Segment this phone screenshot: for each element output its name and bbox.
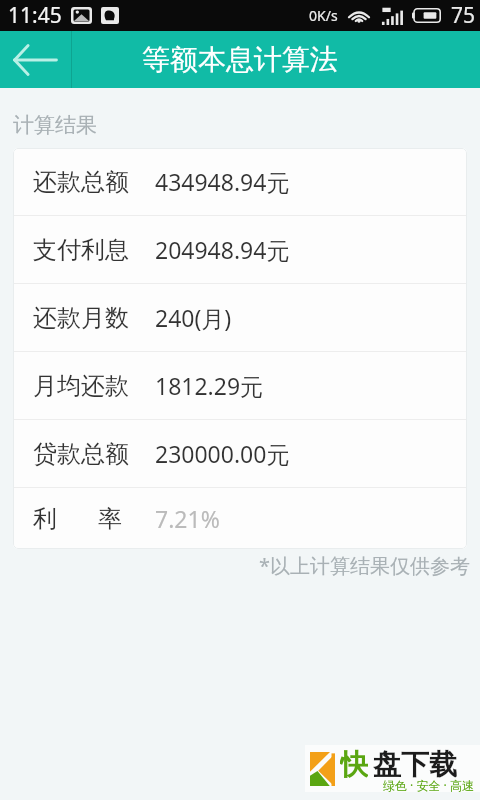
staticText: 11:45 [8, 1, 62, 30]
staticText: 还款总额 [33, 167, 129, 197]
button[interactable]: 贷款总额 [13, 420, 467, 487]
button[interactable]: 月均还款 [13, 352, 467, 419]
staticText: 230000.00元 [155, 438, 290, 469]
staticText: 率 [98, 504, 122, 534]
staticText: 贷款总额 [33, 439, 129, 469]
staticText: 204948.94元 [155, 234, 290, 265]
staticText: 计算结果 [13, 112, 97, 138]
staticText: 盘下载 [373, 747, 457, 781]
button[interactable]: Back [0, 31, 71, 88]
staticText: 75 [451, 1, 476, 30]
staticText: 绿色 · 安全 · 高速 [383, 777, 474, 793]
staticText: 0K/s [309, 6, 338, 25]
staticText: 1812.29元 [155, 370, 264, 401]
staticText: 快 [340, 747, 368, 781]
staticText: 7.21% [155, 503, 220, 534]
staticText: 240(月) [155, 302, 232, 333]
button[interactable]: 还款总额 [13, 148, 467, 215]
staticText: 支付利息 [33, 235, 129, 265]
staticText: *以上计算结果仅供参考 [0, 552, 470, 579]
button[interactable]: 支付利息 [13, 216, 467, 283]
button[interactable]: 利 [13, 488, 467, 549]
button[interactable]: 还款月数 [13, 284, 467, 351]
staticText: 434948.94元 [155, 166, 290, 197]
staticText: 等额本息计算法 [142, 42, 338, 77]
staticText: 利 [33, 504, 57, 534]
staticText: 月均还款 [33, 371, 129, 401]
staticText: 还款月数 [33, 303, 129, 333]
